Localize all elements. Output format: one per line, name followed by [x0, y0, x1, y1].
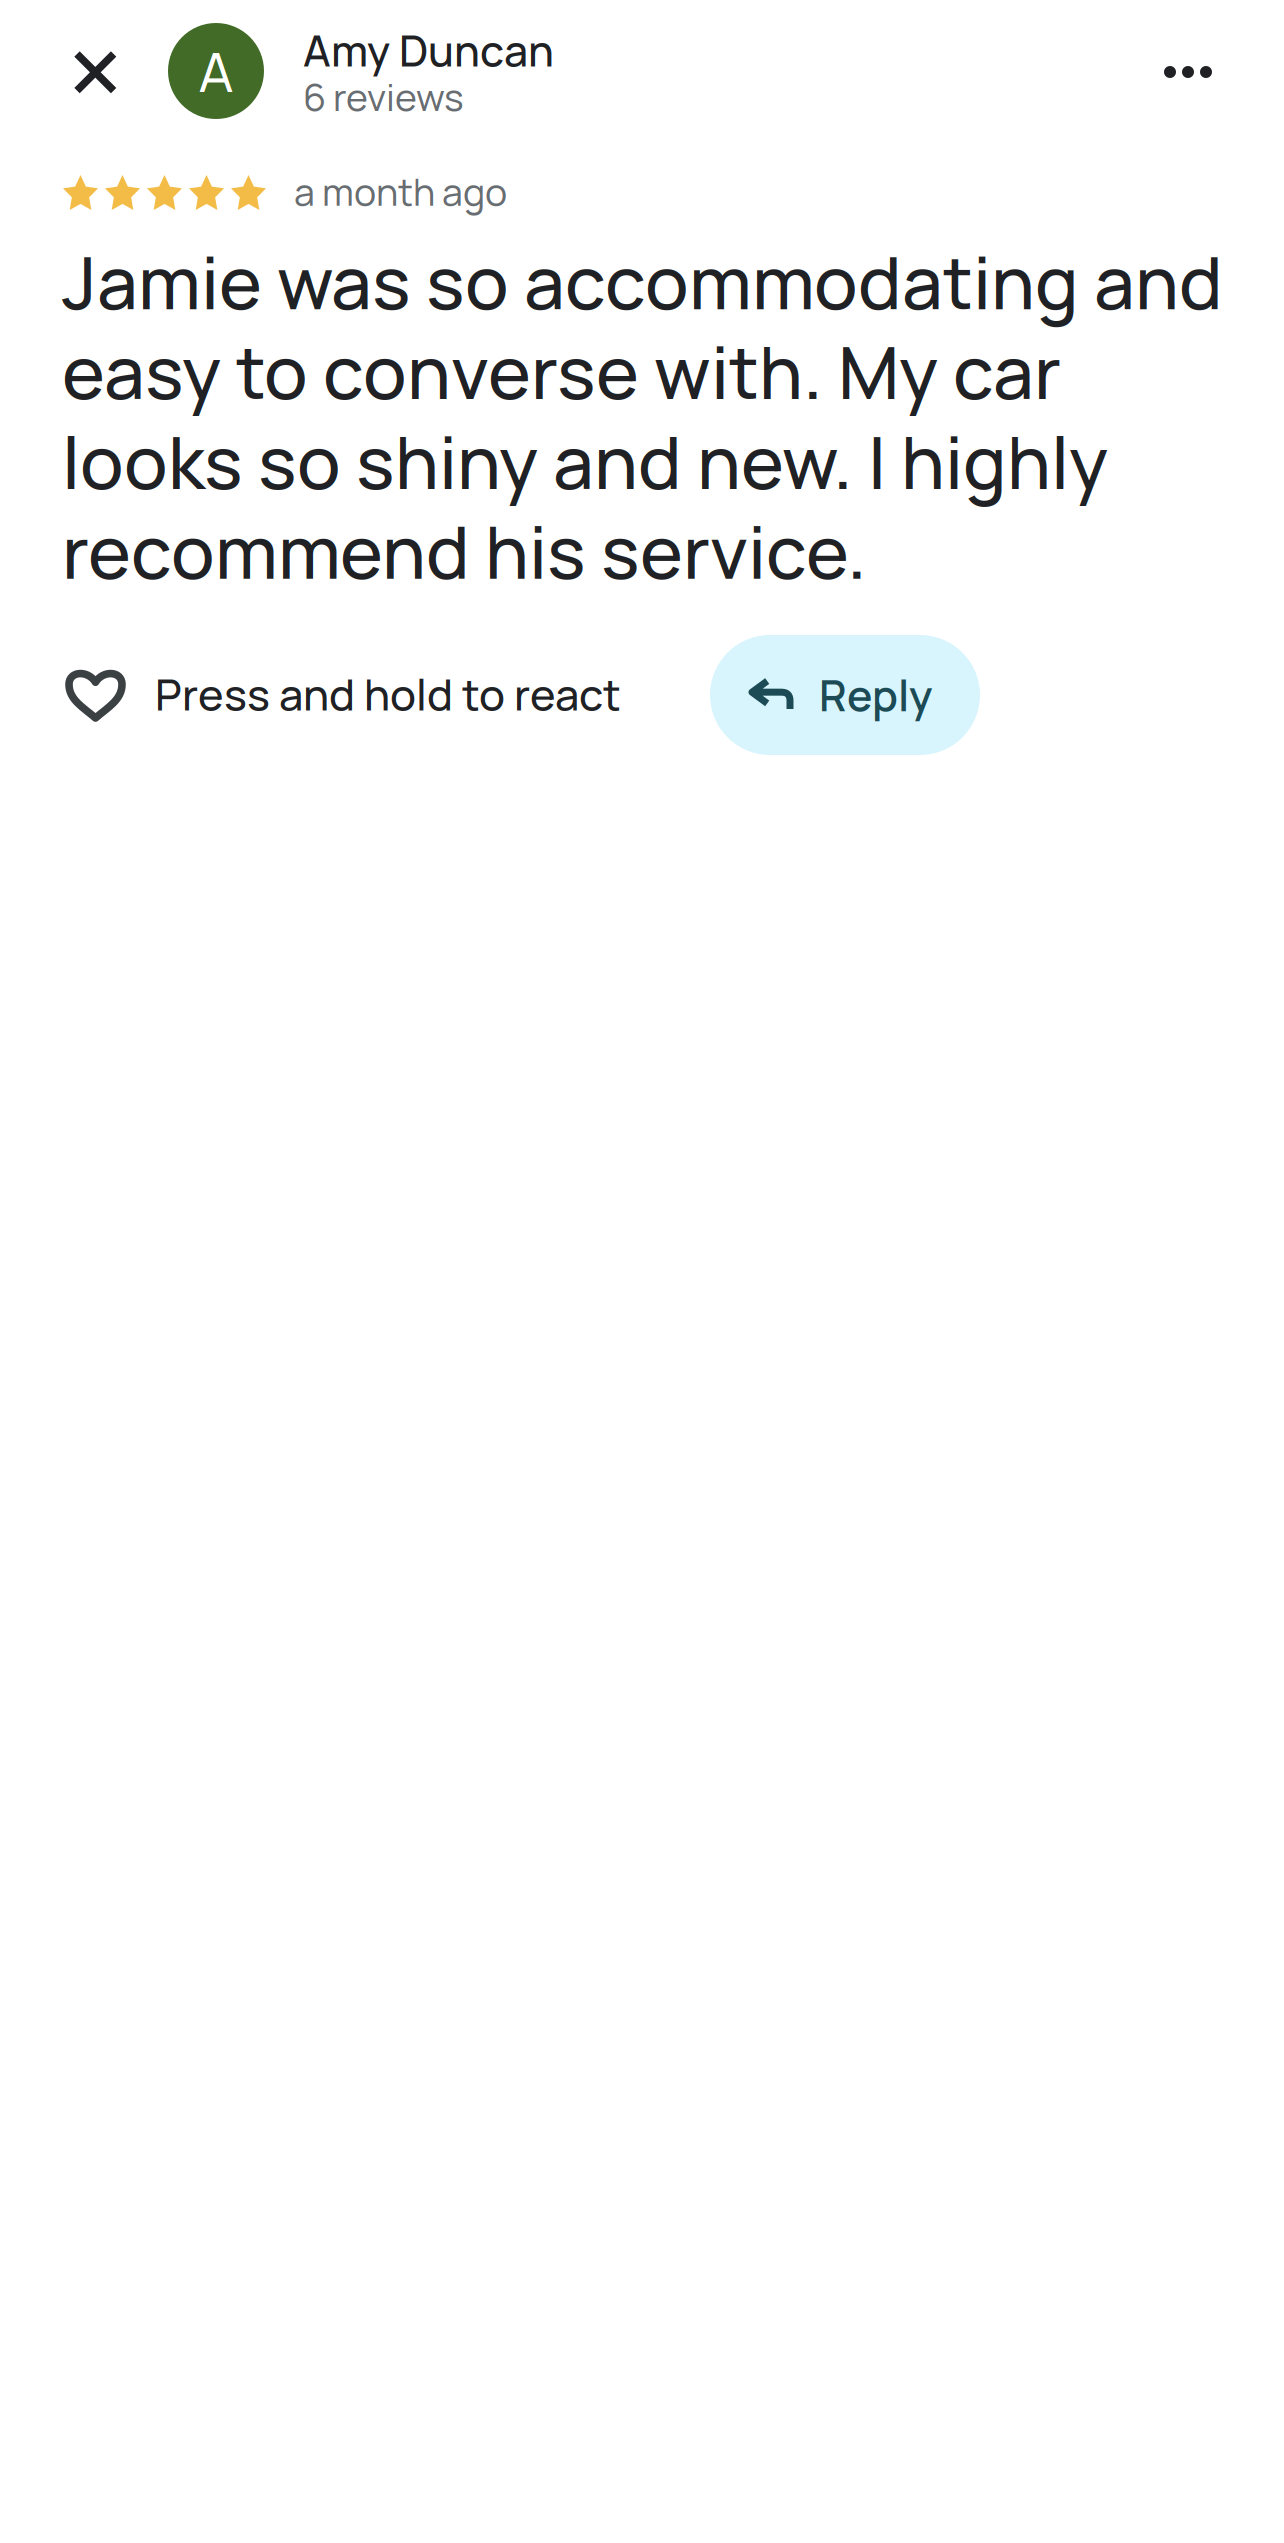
staticText: Amy Duncan: [303, 21, 554, 79]
staticText: Press and hold to react: [155, 664, 621, 723]
button[interactable]: Press and hold to react: [69, 634, 621, 754]
staticText: 6 reviews: [303, 71, 464, 122]
button[interactable]: Reply: [710, 635, 980, 755]
staticText: Jamie was so accommodating and easy to c…: [62, 232, 1223, 600]
button[interactable]: Close: [37, 18, 154, 127]
staticText: a month ago: [294, 166, 507, 217]
staticText: A: [198, 33, 233, 108]
button[interactable]: More options: [1128, 24, 1248, 120]
staticText: Reply: [819, 666, 932, 724]
